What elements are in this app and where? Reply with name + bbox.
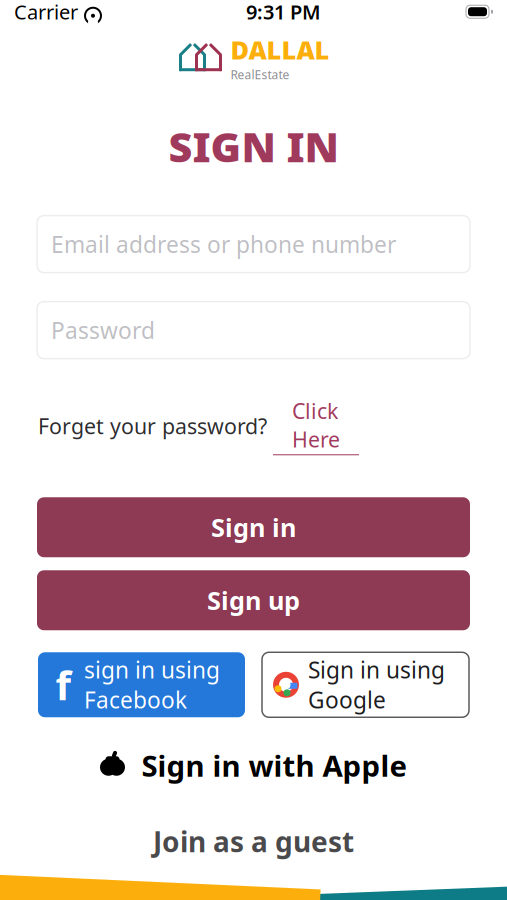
staticText: Click Here	[292, 397, 340, 453]
button[interactable]: Sign in	[37, 497, 470, 557]
staticText: Sign in using	[308, 655, 445, 685]
staticText: f	[55, 658, 70, 711]
button[interactable]: Sign in with Apple	[79, 743, 427, 787]
staticText: RealEstate	[230, 67, 289, 82]
staticText: DALLAL	[230, 33, 329, 66]
staticText: Sign up	[207, 583, 300, 617]
button[interactable]: Join as a guest	[129, 821, 378, 861]
button[interactable]: f	[38, 652, 245, 717]
staticText: Join as a guest	[153, 823, 354, 860]
button[interactable]: Sign in using	[262, 652, 469, 717]
staticText: Carrier	[14, 0, 78, 25]
staticText: 9:31 PM	[246, 0, 321, 25]
staticText: sign in using	[84, 655, 220, 685]
button[interactable]: Sign up	[37, 570, 470, 630]
staticText: Password	[51, 315, 155, 345]
staticText: Email address or phone number	[51, 229, 396, 259]
staticText: Facebook	[84, 685, 187, 715]
staticText: Sign in	[211, 510, 296, 544]
staticText: SIGN IN	[168, 119, 338, 174]
staticText: Sign in with Apple	[141, 746, 407, 785]
staticText: Forget your password?	[38, 412, 267, 440]
button[interactable]: Click Here	[273, 397, 359, 455]
staticText: Google	[308, 685, 386, 715]
